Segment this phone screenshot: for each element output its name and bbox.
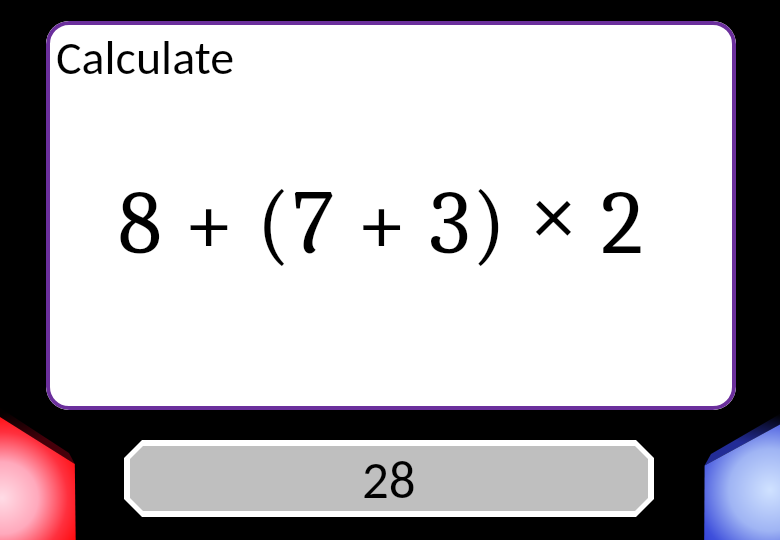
staticText: 8 + (7 + 3) × 2 [118, 163, 645, 276]
button[interactable]: 28 [124, 440, 654, 517]
staticText: Calculate [56, 28, 235, 87]
staticText: 28 [362, 448, 416, 511]
